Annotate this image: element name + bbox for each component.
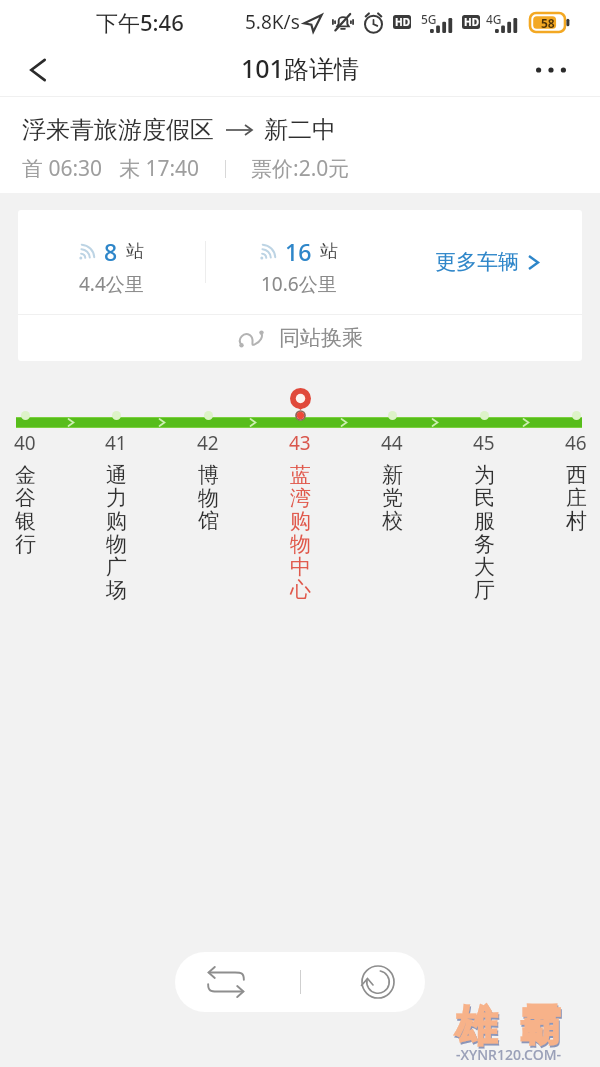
staticText: 4.4公里 bbox=[79, 271, 144, 297]
staticText: 新二中 bbox=[264, 115, 336, 145]
button[interactable]: 43 bbox=[283, 373, 317, 603]
staticText: 博物馆 bbox=[197, 462, 220, 534]
staticText: 同站换乘 bbox=[279, 325, 363, 351]
staticText: 雄 霸 bbox=[456, 997, 562, 1054]
staticText: HD bbox=[464, 15, 479, 29]
staticText: 浮来青旅游度假区 bbox=[22, 115, 214, 145]
staticText: 为民服务大厅 bbox=[473, 462, 496, 603]
button[interactable]: 42 bbox=[191, 373, 225, 534]
button[interactable]: 41 bbox=[99, 373, 133, 603]
button[interactable]: 44 bbox=[375, 373, 409, 534]
button[interactable]: 16 bbox=[206, 236, 392, 297]
staticText: 西庄村 bbox=[565, 462, 588, 534]
staticText: 票价:2.0元 bbox=[251, 154, 350, 183]
button[interactable]: 同站换乘 bbox=[18, 315, 582, 361]
staticText: 5.8K/s bbox=[245, 9, 300, 35]
staticText: 40 bbox=[14, 430, 36, 456]
staticText: 通力购物广场 bbox=[105, 462, 128, 603]
staticText: 45 bbox=[473, 430, 495, 456]
button[interactable]: 46 bbox=[559, 373, 593, 534]
staticText: 蓝湾购物中心 bbox=[289, 462, 312, 603]
staticText: 44 bbox=[381, 430, 403, 456]
staticText: 46 bbox=[565, 430, 587, 456]
staticText: HD bbox=[395, 15, 410, 29]
staticText: 金谷银行 bbox=[14, 462, 37, 557]
staticText: 站 bbox=[320, 240, 338, 263]
staticText: 下午5:46 bbox=[96, 7, 184, 37]
staticText: -XYNR120.COM- bbox=[456, 1045, 561, 1064]
staticText: 8 bbox=[104, 236, 118, 267]
button[interactable]: 8 bbox=[18, 236, 205, 297]
button[interactable]: 45 bbox=[467, 373, 501, 603]
staticText: 41 bbox=[105, 430, 127, 456]
button[interactable]: Back bbox=[14, 46, 62, 94]
staticText: 更多车辆 bbox=[435, 249, 519, 275]
staticText: 101路详情 bbox=[241, 51, 359, 85]
staticText: 站 bbox=[126, 240, 144, 263]
button[interactable]: 40 bbox=[8, 373, 42, 557]
staticText: 4G bbox=[486, 11, 502, 27]
button[interactable]: More options bbox=[529, 48, 573, 92]
button[interactable]: Swap direction bbox=[175, 952, 300, 1012]
staticText: 42 bbox=[197, 430, 219, 456]
button[interactable]: Refresh bbox=[301, 952, 425, 1012]
staticText: 雄 霸 bbox=[455, 995, 561, 1052]
button[interactable]: 更多车辆 bbox=[392, 210, 582, 314]
staticText: 首 06:30 bbox=[22, 154, 103, 183]
staticText: 16 bbox=[285, 236, 312, 267]
staticText: 5G bbox=[421, 11, 437, 27]
staticText: 10.6公里 bbox=[261, 271, 337, 297]
staticText: 新党校 bbox=[381, 462, 404, 534]
staticText: 末 17:40 bbox=[119, 154, 200, 183]
staticText: 58 bbox=[541, 15, 555, 31]
staticText: 43 bbox=[289, 430, 311, 456]
